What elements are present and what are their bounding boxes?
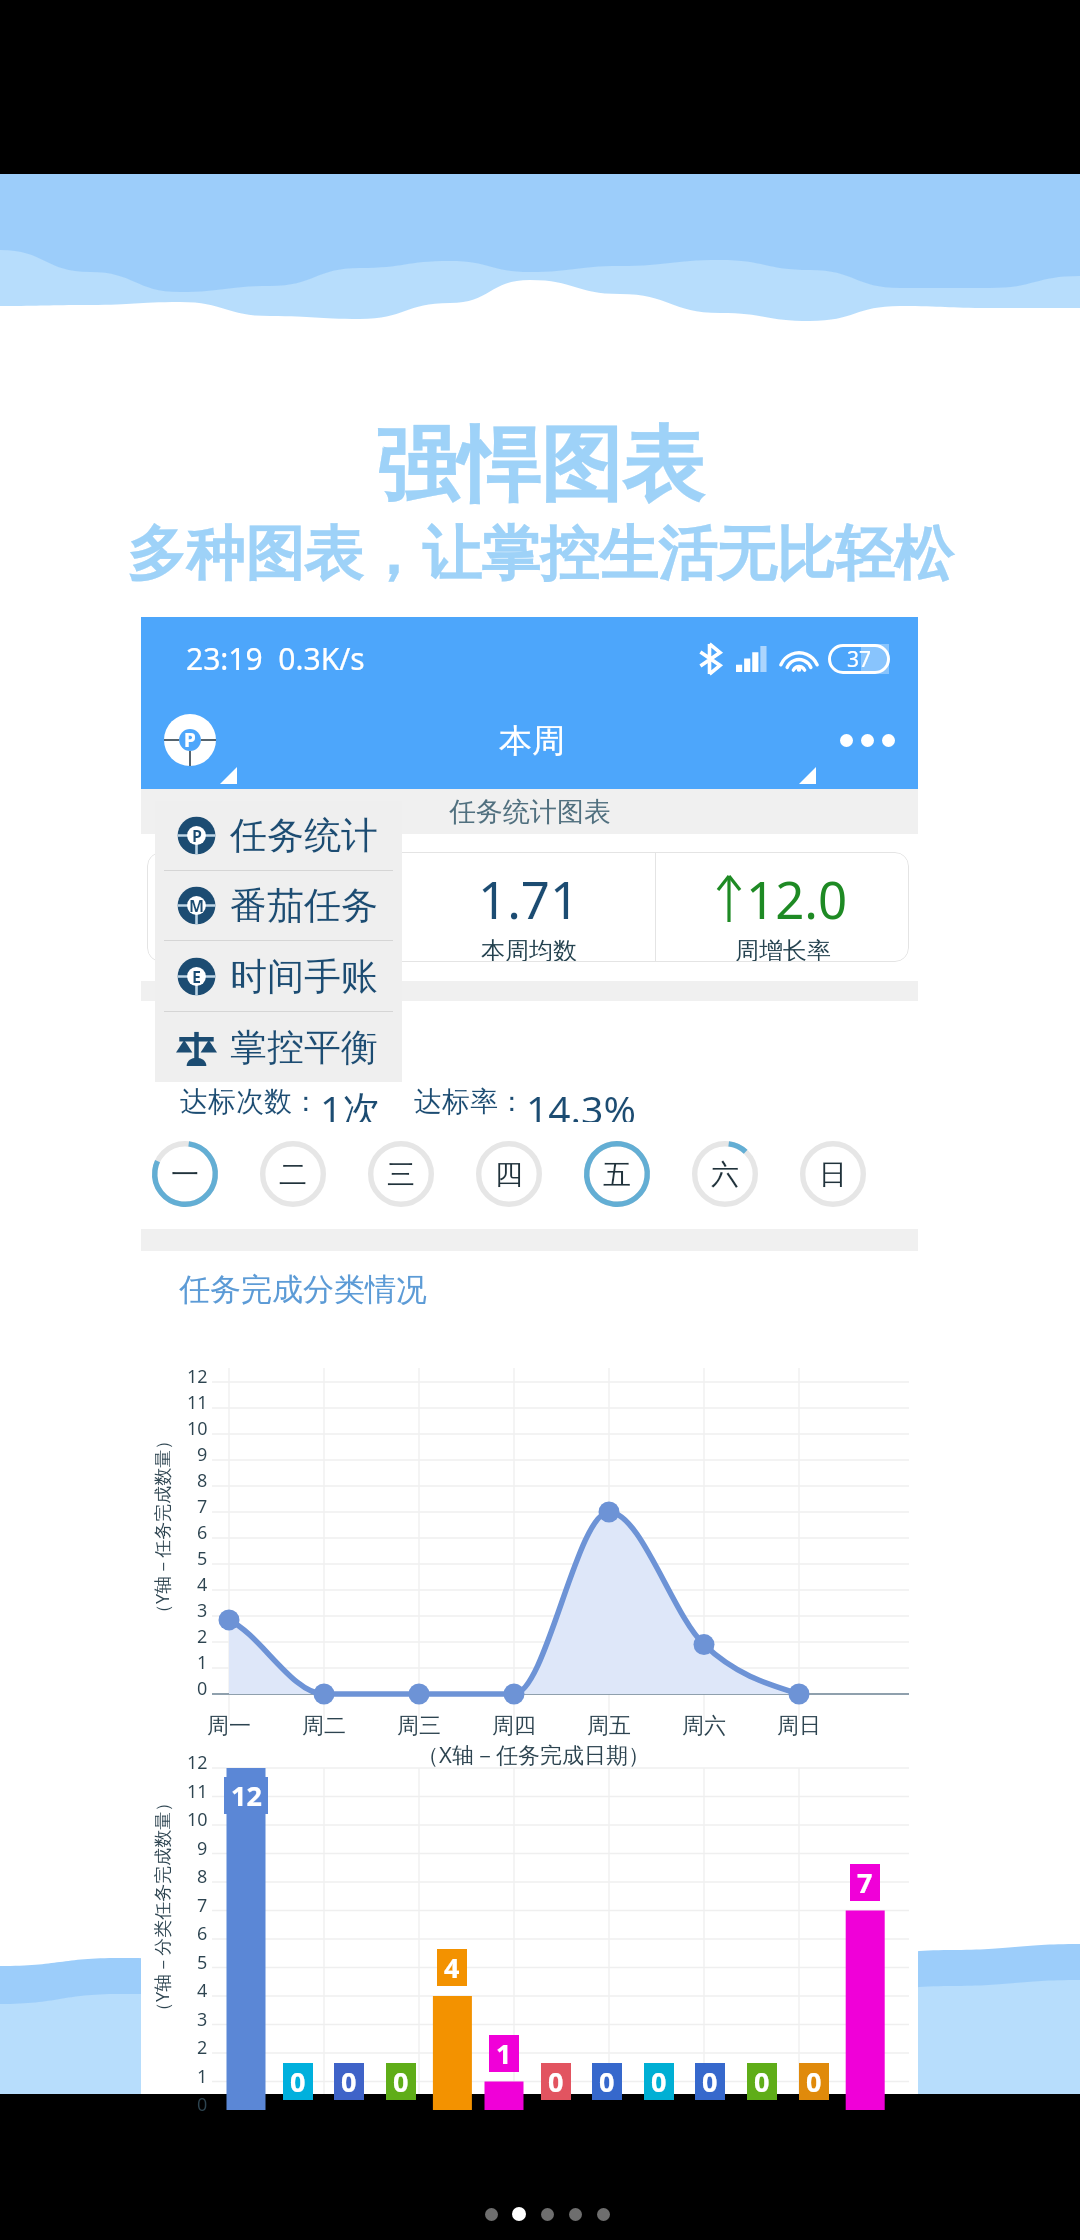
button[interactable]: 三 [363, 1136, 439, 1212]
button[interactable]: 掌控平衡 [155, 1012, 402, 1082]
staticText: P [184, 727, 196, 753]
staticText: 0 [702, 2063, 718, 2100]
button[interactable]: 1.71 [402, 852, 655, 962]
staticText: 0 [754, 2063, 770, 2100]
staticText: 12 [187, 1364, 208, 1389]
staticText: 上周均数 [226, 936, 322, 962]
staticText: 1次 [320, 1082, 382, 1122]
button[interactable]: 12.0 [656, 852, 909, 962]
staticText: 8 [197, 1468, 208, 1493]
staticText: 周三 [397, 1712, 441, 1740]
staticText: 9 [197, 1836, 208, 1861]
button[interactable]: 一 [147, 1136, 223, 1212]
staticText: 0 [341, 2063, 357, 2100]
button[interactable]: P [155, 801, 402, 870]
staticText: 23:19 0.3K/s [186, 638, 365, 679]
button[interactable]: Page 3 [541, 2208, 554, 2221]
staticText: 3 [197, 1598, 208, 1623]
staticText: 周二 [302, 1712, 346, 1740]
staticText: 周四 [492, 1712, 536, 1740]
staticText: 达标次数： [180, 1084, 320, 1119]
staticText: 12 [187, 1750, 208, 1775]
button[interactable]: 二 [255, 1136, 331, 1212]
staticText: 0.86 [223, 864, 325, 933]
staticText: 5 [197, 1546, 208, 1571]
button[interactable]: 四 [471, 1136, 547, 1212]
staticText: 1.71 [478, 864, 580, 933]
button[interactable]: Page 1 [485, 2208, 498, 2221]
staticText: 7 [197, 1494, 208, 1519]
staticText: 强悍图表 [376, 414, 704, 517]
button[interactable]: More options [840, 731, 895, 749]
staticText: 周增长率 [735, 936, 831, 962]
staticText: M [189, 895, 205, 917]
button[interactable]: Page 4 [569, 2208, 582, 2221]
button[interactable]: Page 5 [597, 2208, 610, 2221]
staticText: 11 [187, 1779, 208, 1804]
staticText: 2 [197, 1624, 208, 1649]
staticText: （Y轴－任务完成数量） [150, 1431, 175, 1622]
staticText: 11 [187, 1390, 208, 1415]
button[interactable]: E [155, 941, 402, 1011]
staticText: 0 [290, 2063, 306, 2100]
staticText: 12 [231, 1777, 262, 1814]
staticText: 周五 [587, 1712, 631, 1740]
staticText: （X轴－任务完成日期） [417, 1739, 650, 1769]
staticText: 番茄任务 [230, 882, 378, 929]
staticText: 7 [197, 1893, 208, 1918]
button[interactable]: 日 [795, 1136, 871, 1212]
staticText: 4 [197, 1572, 208, 1597]
staticText: 0 [548, 2063, 564, 2100]
staticText: 二 [279, 1157, 307, 1192]
staticText: 一 [171, 1157, 199, 1192]
staticText: 37 [847, 645, 872, 674]
staticText: 2 [197, 2035, 208, 2060]
staticText: 10 [187, 1807, 208, 1832]
staticText: 9 [197, 1442, 208, 1467]
staticText: 日 [819, 1157, 847, 1192]
staticText: 六 [711, 1157, 739, 1192]
staticText: 4 [197, 1978, 208, 2003]
staticText: 时间手账 [230, 953, 378, 1000]
staticText: 1 [197, 2064, 208, 2089]
staticText: 6 [197, 1520, 208, 1545]
staticText: 达标率： [414, 1084, 526, 1119]
staticText: 6 [197, 1921, 208, 1946]
staticText: 8 [197, 1864, 208, 1889]
staticText: （Y轴－分类任务完成数量） [150, 1793, 175, 2020]
button[interactable]: 0.86 [147, 852, 401, 962]
staticText: 五 [603, 1157, 631, 1192]
staticText: 多种图表，让掌控生活无比轻松 [127, 517, 953, 591]
staticText: 12.0 [746, 864, 848, 933]
staticText: 本周 [499, 720, 565, 762]
staticText: 0 [197, 2092, 208, 2117]
staticText: 4 [444, 1949, 460, 1986]
staticText: 三 [387, 1157, 415, 1192]
staticText: E [192, 966, 201, 988]
button[interactable]: 六 [687, 1136, 763, 1212]
staticText: 四 [495, 1157, 523, 1192]
button[interactable]: M [155, 871, 402, 940]
staticText: 5 [197, 1950, 208, 1975]
staticText: 3 [197, 2007, 208, 2032]
staticText: 任务统计 [230, 812, 378, 859]
button[interactable]: 五 [579, 1136, 655, 1212]
staticText: 0 [197, 1676, 208, 1701]
staticText: 0 [393, 2063, 409, 2100]
staticText: 任务完成分类情况 [179, 1270, 427, 1309]
staticText: 任务统计图表 [449, 795, 611, 829]
staticText: 周一 [207, 1712, 251, 1740]
staticText: 周六 [682, 1712, 726, 1740]
staticText: 0 [651, 2063, 667, 2100]
staticText: 1 [496, 2035, 512, 2072]
staticText: 0 [599, 2063, 615, 2100]
button[interactable]: App logo [164, 714, 216, 766]
button[interactable]: Page 2 [512, 2207, 526, 2221]
staticText: 1 [197, 1650, 208, 1675]
staticText: 本周均数 [481, 936, 577, 962]
staticText: 掌控平衡 [230, 1024, 378, 1071]
staticText: 7 [857, 1864, 873, 1901]
staticText: 10 [187, 1416, 208, 1441]
staticText: 周日 [777, 1712, 821, 1740]
staticText: 14.3% [526, 1082, 636, 1122]
